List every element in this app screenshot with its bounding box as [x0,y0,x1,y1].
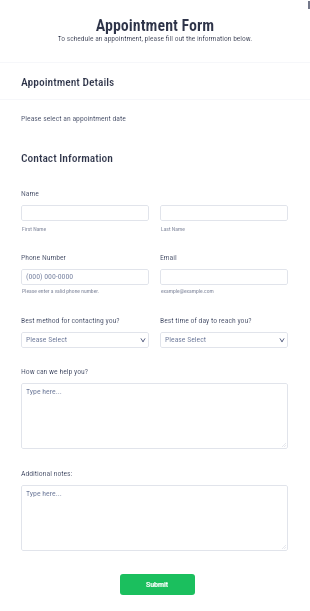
staticText: Appointment Form [0,16,310,35]
staticText: Name [21,189,39,198]
staticText: Type here... [26,489,62,498]
staticText: Phone Number [21,253,66,262]
staticText: Additional notes: [21,469,73,478]
staticText: Best method for contacting you? [21,316,120,325]
staticText: Email [160,253,177,262]
staticText: Please Select [165,335,206,344]
staticText: Submit [146,580,169,589]
staticText: Please Select [26,335,67,344]
button[interactable]: Type here... [21,485,288,551]
staticText: First Name [22,226,47,233]
staticText: How can we help you? [21,367,89,376]
staticText: Please enter a valid phone number. [22,288,100,295]
staticText: Contact Information [21,151,113,164]
staticText: To schedule an appointment, please fill … [0,34,310,43]
staticText: Last Name [161,226,185,233]
staticText: (000) 000-0000 [26,272,74,281]
button[interactable]: Text input [160,205,288,221]
button[interactable]: Type here... [21,383,288,449]
button[interactable]: Text input [21,205,149,221]
staticText: Best time of day to reach you? [160,316,252,325]
staticText: Appointment Details [21,75,115,88]
staticText: Type here... [26,387,62,396]
button[interactable]: Submit [120,574,195,595]
button[interactable]: (000) 000-0000 [21,269,149,285]
button[interactable]: Text input [160,269,288,285]
staticText: Please select an appointment date [21,114,126,123]
button[interactable]: Please Select [21,332,149,348]
staticText: example@example.com [161,288,214,295]
button[interactable]: Please Select [160,332,288,348]
